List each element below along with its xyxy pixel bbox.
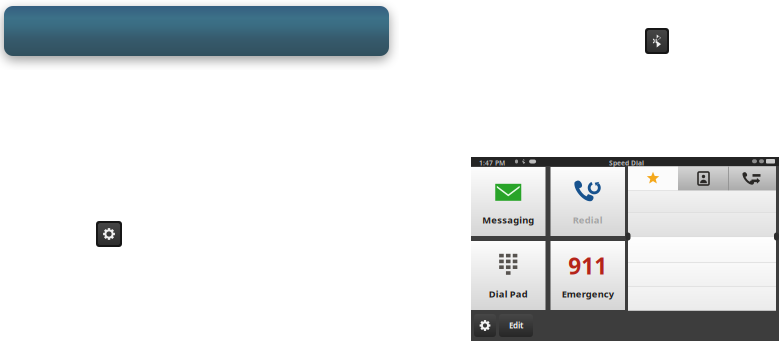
button[interactable]: Contacts: [678, 166, 729, 190]
staticText: Dial Pad: [489, 288, 528, 300]
staticText: 911: [568, 251, 607, 281]
button[interactable]: Settings: [474, 314, 496, 337]
button[interactable]: Dial Pad: [471, 241, 545, 310]
staticText: Redial: [573, 214, 603, 226]
button[interactable]: Edit: [499, 314, 533, 337]
button[interactable]: Messaging: [471, 167, 545, 236]
button[interactable]: Favorites: [628, 166, 678, 190]
staticText: 1:47 PM: [479, 158, 505, 167]
staticText: Emergency: [562, 288, 614, 300]
button[interactable]: Bluetooth: [645, 28, 669, 54]
staticText: Speed Dial: [609, 158, 644, 167]
button[interactable]: Recent calls: [729, 166, 776, 190]
staticText: Edit: [509, 320, 523, 331]
button[interactable]: Redial: [550, 167, 625, 236]
button[interactable]: Settings: [96, 221, 122, 247]
staticText: Messaging: [482, 214, 534, 226]
button[interactable]: 911: [550, 241, 625, 310]
